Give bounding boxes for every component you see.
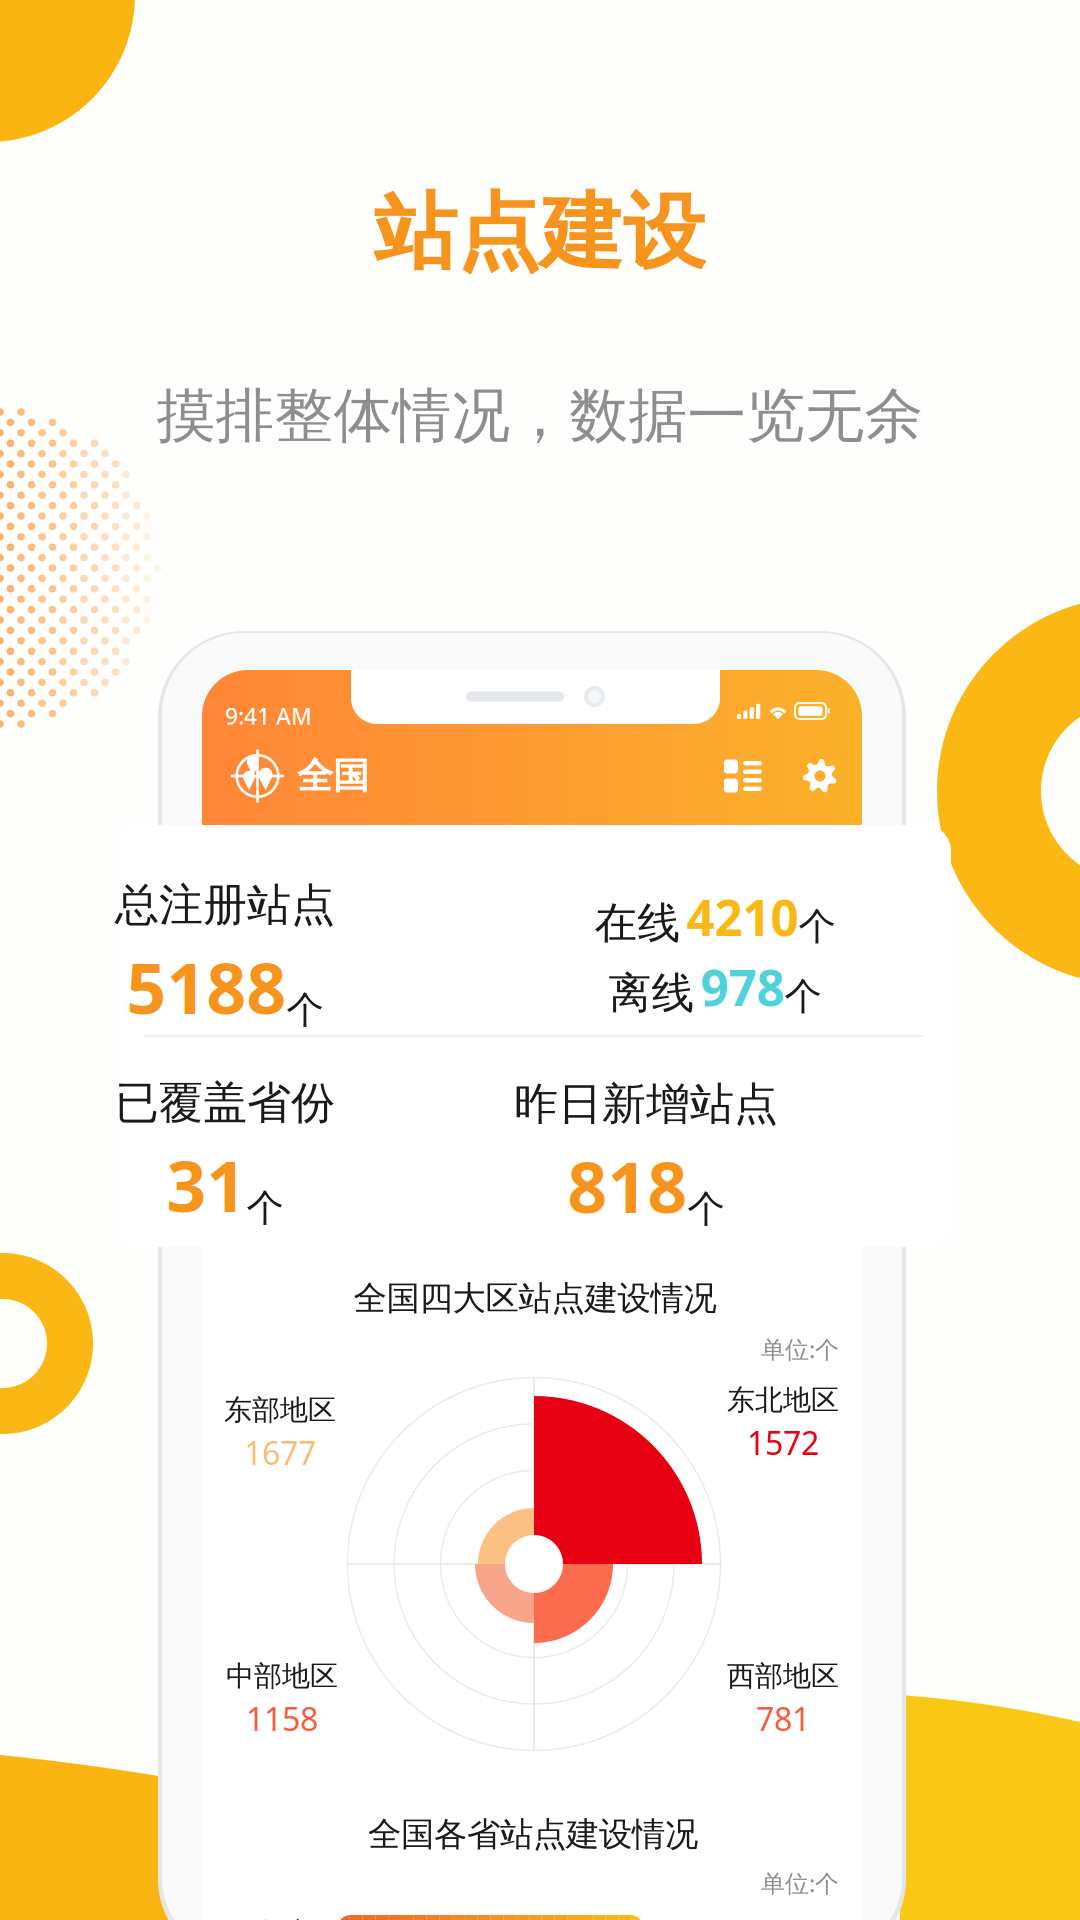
staticText: 昨日新增站点 [514,1077,778,1131]
staticText: 个 [687,1186,724,1232]
staticText: 总注册站点 [115,878,335,932]
button[interactable]: List view [712,726,774,826]
staticText: 781 [756,1697,810,1740]
staticText: 1572 [747,1421,819,1464]
staticText: 西部地区 [727,1659,839,1693]
staticText: 站点建设 [374,182,706,283]
staticText: 9:41 AM [225,701,312,731]
staticText: 1677 [244,1431,316,1474]
staticText: 5188 [126,941,286,1033]
staticText: 个 [784,974,821,1020]
staticText: 全国 [297,754,369,798]
staticText: 978 [700,954,784,1019]
staticText: 818 [567,1140,687,1232]
staticText: 河南 [262,1916,310,1920]
staticText: 个 [286,987,323,1033]
staticText: 31 [166,1139,246,1231]
staticText: 离线 [608,967,694,1019]
staticText: 单位:个 [761,1867,839,1899]
staticText: 东北地区 [727,1383,839,1417]
staticText: 单位:个 [761,1333,839,1365]
staticText: 全国各省站点建设情况 [368,1814,698,1855]
staticText: 全国四大区站点建设情况 [353,1278,716,1319]
staticText: 个 [798,904,835,950]
button[interactable]: 全国 [231,726,369,826]
staticText: 1158 [246,1697,318,1740]
staticText: 中部地区 [226,1659,338,1693]
staticText: 摸排整体情况，数据一览无余 [156,380,923,452]
button[interactable]: Settings [789,726,851,826]
staticText: 4210 [686,884,798,949]
staticText: 在线 [594,897,680,949]
staticText: 个 [246,1185,283,1231]
staticText: 东部地区 [224,1393,336,1427]
staticText: 已覆盖省份 [115,1076,335,1130]
